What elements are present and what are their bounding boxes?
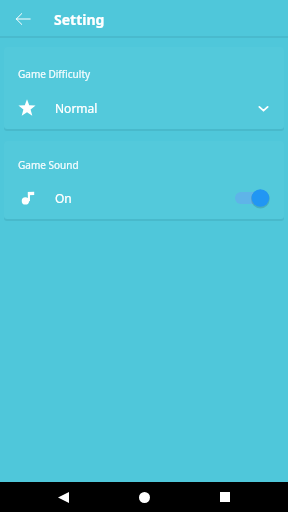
- button[interactable]: Recent apps: [207, 482, 243, 512]
- staticText: Setting: [54, 10, 105, 29]
- button[interactable]: Back: [8, 4, 38, 34]
- button[interactable]: Back: [45, 482, 81, 512]
- staticText: Game Difficulty: [18, 67, 91, 81]
- button[interactable]: Home: [126, 482, 162, 512]
- staticText: On: [55, 190, 72, 206]
- staticText: Game Sound: [18, 158, 79, 172]
- button[interactable]: Normal: [4, 91, 284, 125]
- staticText: Normal: [55, 100, 98, 116]
- button[interactable]: On: [4, 182, 284, 214]
- button[interactable]: Toggle game sound: [234, 185, 276, 211]
